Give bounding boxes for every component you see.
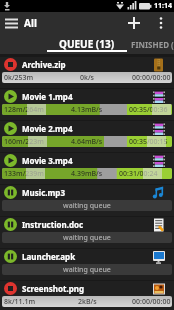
staticText: 2kB/s [78,297,97,307]
staticText: 4.64mB/s [71,137,103,147]
staticText: 0k/253m [4,73,34,83]
button[interactable]: Movie 3.mp4 [0,152,174,184]
button[interactable]: Music.mp3 [0,184,174,216]
staticText: Movie 3.mp4 [22,155,73,166]
button[interactable] [122,12,146,34]
staticText: All [24,16,37,30]
button[interactable] [0,12,22,34]
staticText: Movie 1.mp4 [22,91,73,102]
staticText: 0k/s [80,73,95,83]
staticText: 160m/223m [4,137,44,147]
staticText: Archive.zip [22,59,66,70]
button[interactable]: Movie 1.mp4 [0,88,174,120]
staticText: 8k/11.1m [4,297,36,307]
staticText: waiting queue [63,265,111,275]
button[interactable]: Movie 2.mp4 [0,120,174,152]
staticText: 00:31/00:24 [119,169,158,179]
staticText: 4.13mB/s [71,105,103,115]
button[interactable]: FINISHED (33) [131,34,174,54]
staticText: 11:14 [154,1,172,11]
staticText: 00:00/00:00 [132,297,171,307]
staticText: waiting queue [63,233,111,243]
staticText: Launcher.apk [22,251,76,262]
staticText: Movie 2.mp4 [22,123,73,134]
button[interactable]: Instruction.doc [0,216,174,248]
staticText: 4.39mB/s [71,169,103,179]
button[interactable]: QUEUE (13) [47,34,127,54]
staticText: 133m/239m [4,169,44,179]
staticText: 00:35/00:15 [129,137,168,147]
button[interactable]: Screenshot.png [0,280,174,310]
staticText: Music.mp3 [22,187,65,198]
staticText: Screenshot.png [22,283,84,294]
button[interactable]: Launcher.apk [0,248,174,280]
staticText: Instruction.doc [22,219,84,230]
staticText: 00:35/00:36 [129,105,168,115]
staticText: QUEUE (13) [59,37,115,51]
staticText: FINISHED (33) [131,39,174,50]
staticText: 00:00/00:00 [132,73,171,83]
staticText: waiting queue [63,201,111,211]
button[interactable] [152,14,170,32]
staticText: 128m/264m [4,105,44,115]
button[interactable]: Archive.zip [0,56,174,88]
